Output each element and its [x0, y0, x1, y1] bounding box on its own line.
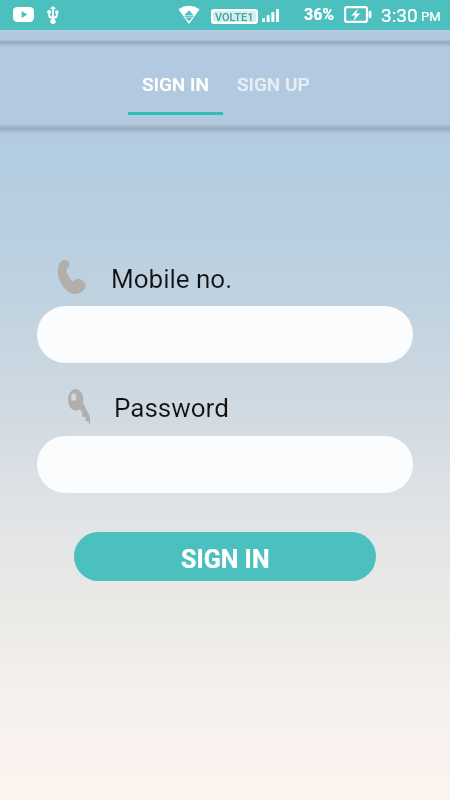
button[interactable]: SIGN IN [74, 532, 376, 581]
staticText: PM [421, 9, 441, 24]
other: YouTube [13, 7, 34, 22]
staticText: VOLTE1 [215, 11, 254, 22]
staticText: SIGN UP [237, 73, 310, 95]
button[interactable]: SIGN IN [128, 73, 223, 129]
button[interactable]: SIGN UP [226, 73, 321, 129]
staticText: Mobile no. [111, 264, 233, 294]
button[interactable] [37, 436, 413, 493]
staticText: Password [114, 393, 229, 423]
staticText: SIGN IN [181, 545, 270, 574]
staticText: SIGN IN [142, 73, 209, 95]
other: USB connected [46, 6, 60, 24]
staticText: 3:30 [381, 4, 418, 26]
staticText: 36% [304, 5, 335, 24]
button[interactable] [37, 306, 413, 363]
